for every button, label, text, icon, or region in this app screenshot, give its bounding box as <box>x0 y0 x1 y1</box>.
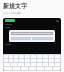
button[interactable] <box>11 32 53 35</box>
button[interactable]: 登録 <box>3 18 61 71</box>
staticText: 入力した文字を登録 <box>3 12 22 15</box>
button[interactable]: 登録 <box>5 19 15 22</box>
staticText: 新規文字 <box>3 2 27 10</box>
